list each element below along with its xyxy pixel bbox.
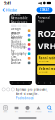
button[interactable]: Aplikace [22, 106, 33, 113]
staticText: Personal Plan [37, 16, 50, 23]
staticText: Case Studies [11, 55, 21, 62]
button[interactable]: Hledat [44, 106, 55, 113]
button[interactable]: Case Studies [9, 56, 32, 61]
staticText: Aplikace pro plánování, [16, 88, 48, 91]
staticText: Hledat [47, 111, 51, 113]
staticText: VRH [37, 40, 55, 52]
staticText: Arkáda [35, 111, 41, 113]
staticText: Aplikace [24, 111, 30, 113]
staticText: Typography [11, 52, 26, 55]
staticText: 6 kroků · 12 min [39, 60, 49, 62]
staticText: ROZ [37, 27, 55, 40]
staticText: Archive [11, 61, 21, 65]
button[interactable]: Hry [11, 106, 22, 113]
button[interactable]: ZÍSKAT [36, 7, 52, 13]
button[interactable]: Motion Studies [9, 38, 32, 42]
staticText: Dnes [3, 111, 7, 113]
staticText: Brand Identity [11, 32, 22, 39]
staticText: Ranní rutina [39, 56, 55, 60]
staticText: Experiences [11, 21, 27, 24]
staticText: Motion Studies [11, 36, 21, 43]
button[interactable]: Photography [9, 47, 32, 51]
button[interactable]: Archive [9, 61, 32, 65]
button[interactable]: Hledat [2, 6, 16, 14]
button[interactable]: Dnes [0, 106, 11, 113]
staticText: Hry [15, 111, 18, 113]
staticText: Illustration [11, 43, 26, 46]
staticText: Photography [11, 46, 27, 53]
button[interactable]: Typography [9, 51, 32, 56]
button[interactable]: Brand Identity [9, 33, 32, 38]
staticText: Hledat [5, 7, 16, 13]
staticText: 4 kroky · 8 min [39, 71, 48, 73]
staticText: které si osvojíte. [16, 92, 39, 96]
button[interactable]: Design Systems [9, 28, 32, 33]
button[interactable]: Illustration [9, 42, 32, 47]
staticText: Podrobnosti [16, 96, 34, 100]
button[interactable]: Arkáda [33, 106, 44, 113]
staticText: 9:41 [4, 0, 11, 6]
staticText: Design Systems [11, 27, 21, 34]
staticText: ZÍSKAT [39, 8, 49, 12]
staticText: Create Memorable [11, 13, 28, 20]
staticText: Večerní reset [39, 67, 55, 71]
